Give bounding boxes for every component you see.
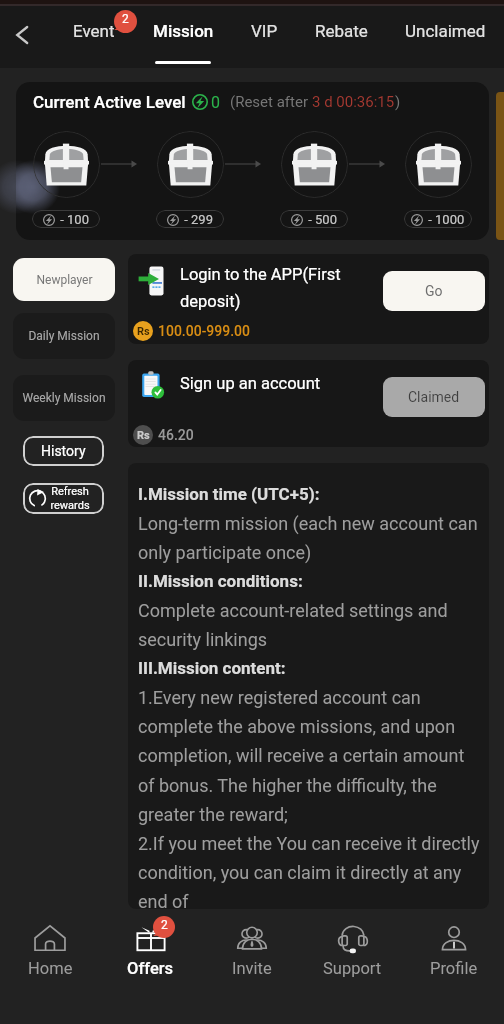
staticText: Refresh rewards — [50, 485, 90, 512]
staticText: Long-term mission (each new account can — [138, 513, 478, 534]
staticText: Claimed — [408, 389, 460, 405]
button[interactable]: Login to the APP(First deposit) — [128, 254, 489, 344]
button[interactable] — [405, 131, 472, 198]
button[interactable] — [281, 131, 348, 198]
button[interactable]: Back — [0, 13, 43, 56]
staticText: Weekly Mission — [22, 391, 106, 405]
button[interactable]: Support — [302, 909, 403, 1024]
staticText: Home — [28, 959, 73, 978]
button[interactable]: Refresh rewards — [23, 483, 104, 514]
staticText: VIP — [251, 21, 278, 41]
staticText: - 299 — [181, 212, 213, 227]
staticText: Profile — [430, 959, 478, 978]
button[interactable] — [157, 131, 224, 198]
staticText: 3 d 00:36:15 — [312, 93, 395, 111]
staticText: Daily Mission — [28, 329, 100, 343]
staticText: II.Mission conditions: — [138, 571, 303, 591]
staticText: 2.If you meet the You can receive it dir… — [138, 833, 480, 854]
staticText: - 500 — [305, 212, 337, 227]
staticText: completion, will receive a certain amoun… — [138, 745, 465, 766]
staticText: III.Mission content: — [138, 658, 286, 678]
staticText: Current Active Level — [33, 92, 186, 112]
button[interactable] — [33, 131, 100, 198]
staticText: I.Mission time (UTC+5): — [138, 484, 320, 504]
staticText: Unclaimed — [405, 21, 486, 41]
staticText: end of — [138, 891, 189, 909]
staticText: Rs — [137, 325, 150, 338]
button[interactable]: Daily Mission — [13, 313, 115, 359]
staticText: Go — [425, 283, 443, 299]
staticText: of bonus. The higher the difficulty, the — [138, 775, 437, 796]
staticText: 100.00-999.00 — [158, 323, 250, 339]
staticText: 1.Every new registered account can — [138, 687, 421, 708]
staticText: - 100 — [57, 212, 89, 227]
staticText: Event — [73, 21, 115, 41]
staticText: condition, you can claim it directly at … — [138, 862, 462, 883]
staticText: Rs — [137, 429, 150, 442]
staticText: Login to the APP(First deposit) — [180, 265, 356, 311]
staticText: Invite — [232, 959, 272, 978]
button[interactable]: Profile — [403, 909, 504, 1024]
button[interactable]: Event — [46, 0, 142, 68]
staticText: Offers — [127, 959, 174, 978]
button[interactable]: Mission — [135, 0, 231, 68]
staticText: ) — [395, 93, 401, 111]
staticText: Newplayer — [36, 273, 93, 287]
staticText: 0 — [211, 93, 220, 112]
staticText: Mission — [153, 21, 214, 41]
button[interactable]: Invite — [201, 909, 302, 1024]
staticText: only participate once) — [138, 542, 312, 563]
button[interactable]: Claimed — [383, 377, 485, 417]
staticText: (Reset after — [230, 93, 312, 111]
staticText: - 1000 — [425, 212, 465, 227]
button[interactable]: History — [23, 436, 104, 466]
staticText: 2 — [161, 918, 168, 932]
button[interactable]: Sign up an account — [128, 360, 489, 447]
button[interactable]: 2 — [100, 909, 201, 1024]
staticText: greater the reward; — [138, 804, 288, 825]
staticText: Rebate — [315, 21, 368, 41]
button[interactable]: Go — [383, 271, 485, 311]
staticText: Complete account-related settings and — [138, 600, 448, 621]
staticText: Support — [323, 959, 382, 978]
button[interactable]: Home — [0, 909, 100, 1024]
staticText: Sign up an account — [180, 374, 356, 393]
staticText: 2 — [122, 12, 129, 26]
button[interactable]: VIP — [216, 0, 312, 68]
button[interactable]: Weekly Mission — [13, 375, 115, 421]
button[interactable]: Unclaimed — [397, 0, 493, 68]
staticText: security linkings — [138, 629, 268, 650]
staticText: complete the above missions, and upon — [138, 716, 456, 737]
button[interactable]: Newplayer — [13, 258, 115, 301]
staticText: 46.20 — [158, 427, 194, 443]
staticText: History — [41, 443, 86, 459]
button[interactable]: Rebate — [293, 0, 389, 68]
